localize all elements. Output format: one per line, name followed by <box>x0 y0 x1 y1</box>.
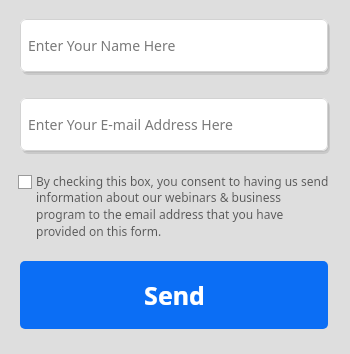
button[interactable]: Enter Your Name Here <box>20 19 328 72</box>
staticText: Enter Your E-mail Address Here <box>28 115 233 134</box>
button[interactable]: Send <box>20 261 328 329</box>
button[interactable]: Consent checkbox <box>18 173 332 240</box>
staticText: Send <box>144 278 205 312</box>
button[interactable]: Enter Your E-mail Address Here <box>20 98 328 151</box>
staticText: Enter Your Name Here <box>28 36 176 55</box>
staticText: By checking this box, you consent to hav… <box>36 173 332 240</box>
other: Consent checkbox <box>18 175 32 189</box>
